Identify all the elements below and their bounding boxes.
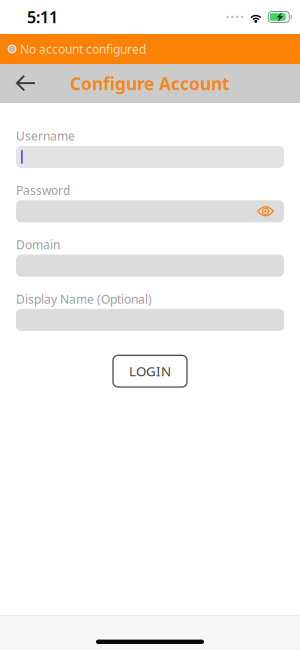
staticText: Display Name (Optional) — [16, 291, 152, 307]
staticText: Username — [16, 128, 75, 144]
button[interactable]: Show password — [257, 205, 284, 218]
button[interactable]: Password — [16, 200, 284, 222]
button[interactable]: Domain — [16, 255, 284, 277]
button[interactable]: Back — [0, 64, 52, 103]
button[interactable]: Username — [16, 146, 284, 168]
staticText: 5:11 — [27, 6, 58, 28]
staticText: LOGIN — [129, 362, 171, 380]
staticText: No account configured — [20, 41, 146, 57]
staticText: Configure Account — [70, 72, 230, 95]
staticText: Domain — [16, 237, 60, 253]
button[interactable]: LOGIN — [113, 355, 187, 387]
staticText: Password — [16, 182, 70, 198]
